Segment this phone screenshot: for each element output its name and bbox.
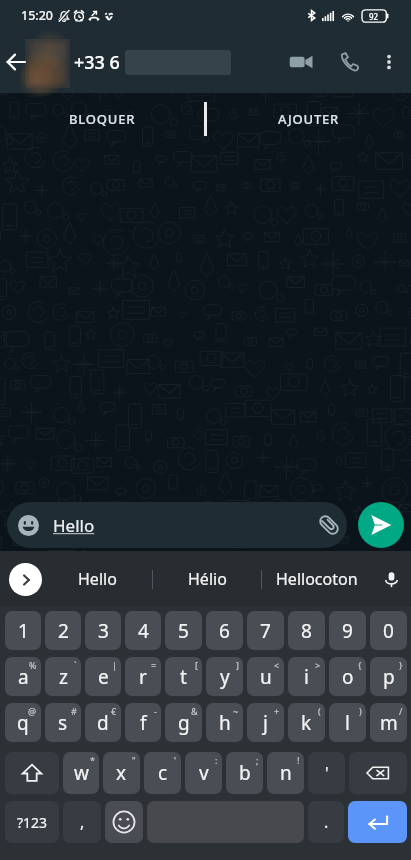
staticText: = bbox=[151, 659, 157, 671]
button[interactable]: ?123 bbox=[5, 801, 59, 843]
button[interactable]: v bbox=[185, 752, 222, 794]
staticText: @ bbox=[28, 705, 37, 717]
staticText: y bbox=[220, 664, 230, 690]
staticText: x bbox=[116, 760, 127, 786]
staticText: Hellocoton bbox=[276, 568, 358, 590]
button[interactable]: 2 bbox=[45, 611, 81, 650]
button[interactable]: 4 bbox=[125, 611, 161, 650]
button[interactable]: l bbox=[329, 703, 366, 742]
staticText: q bbox=[17, 710, 29, 736]
staticText: w bbox=[74, 760, 89, 786]
staticText: € bbox=[111, 705, 117, 717]
button[interactable]: n bbox=[267, 752, 304, 794]
button[interactable]: BLOQUER bbox=[0, 96, 204, 141]
button[interactable]: c bbox=[144, 752, 181, 794]
staticText: u bbox=[260, 664, 272, 690]
button[interactable]: Voice input bbox=[371, 551, 411, 607]
staticText: k bbox=[301, 710, 312, 736]
button[interactable]: g bbox=[165, 703, 202, 742]
button[interactable]: Backspace bbox=[349, 752, 407, 794]
button[interactable]: p bbox=[370, 657, 407, 696]
button[interactable]: w bbox=[63, 752, 99, 794]
staticText: AJOUTER bbox=[278, 110, 340, 128]
button[interactable]: Shift bbox=[5, 752, 59, 794]
staticText: } bbox=[399, 659, 403, 671]
button[interactable]: 3 bbox=[85, 611, 121, 650]
button[interactable]: . bbox=[308, 801, 344, 843]
button[interactable]: Send bbox=[358, 502, 404, 548]
button[interactable]: e bbox=[85, 657, 121, 696]
button[interactable]: Hellocoton bbox=[262, 551, 371, 607]
button[interactable]: 1 bbox=[5, 611, 41, 650]
staticText: < bbox=[274, 659, 280, 671]
staticText: : bbox=[215, 754, 218, 766]
staticText: & bbox=[191, 705, 198, 717]
button[interactable]: o bbox=[329, 657, 366, 696]
staticText: ` bbox=[74, 659, 77, 671]
staticText: h bbox=[219, 710, 231, 736]
button[interactable]: 5 bbox=[165, 611, 202, 650]
button[interactable]: d bbox=[85, 703, 121, 742]
button[interactable] bbox=[25, 39, 70, 88]
button[interactable]: b bbox=[226, 752, 263, 794]
button[interactable]: Back bbox=[2, 31, 30, 93]
button[interactable]: j bbox=[247, 703, 284, 742]
staticText: { bbox=[358, 659, 362, 671]
button[interactable]: 8 bbox=[288, 611, 325, 650]
button[interactable]: s bbox=[45, 703, 81, 742]
button[interactable]: i bbox=[288, 657, 325, 696]
staticText: ' bbox=[325, 762, 329, 784]
staticText: BLOQUER bbox=[69, 110, 136, 128]
staticText: " bbox=[132, 754, 136, 766]
staticText: Hélio bbox=[188, 568, 227, 590]
button[interactable]: m bbox=[370, 703, 407, 742]
button[interactable]: Hélio bbox=[153, 551, 261, 607]
button[interactable]: 9 bbox=[329, 611, 366, 650]
button[interactable]: Voice call bbox=[330, 31, 370, 93]
staticText: m bbox=[380, 710, 398, 736]
button[interactable]: z bbox=[45, 657, 81, 696]
button[interactable]: f bbox=[125, 703, 161, 742]
button[interactable]: Hello bbox=[42, 551, 152, 607]
button[interactable]: t bbox=[165, 657, 202, 696]
staticText: r bbox=[139, 664, 147, 690]
button[interactable]: h bbox=[206, 703, 243, 742]
button[interactable]: k bbox=[288, 703, 325, 742]
staticText: # bbox=[71, 705, 77, 717]
button[interactable]: Enter bbox=[348, 801, 407, 843]
staticText: % bbox=[29, 659, 37, 671]
staticText: . bbox=[324, 811, 329, 833]
button[interactable]: ' bbox=[308, 752, 345, 794]
staticText: s bbox=[58, 710, 68, 736]
button[interactable]: Video call bbox=[280, 31, 322, 93]
button[interactable]: 0 bbox=[370, 611, 407, 650]
staticText: 92 bbox=[369, 11, 379, 22]
button[interactable]: , bbox=[63, 801, 101, 843]
staticText: d bbox=[97, 710, 109, 736]
button[interactable]: x bbox=[103, 752, 140, 794]
button[interactable]: Hello bbox=[7, 502, 347, 548]
button[interactable]: More options bbox=[372, 31, 406, 93]
button[interactable]: 6 bbox=[206, 611, 243, 650]
button[interactable]: q bbox=[5, 703, 41, 742]
staticText: > bbox=[315, 659, 321, 671]
button[interactable]: y bbox=[206, 657, 243, 696]
staticText: 8 bbox=[301, 618, 312, 644]
staticText: a bbox=[18, 664, 29, 690]
staticText: 1 bbox=[18, 618, 29, 644]
staticText: Hello bbox=[53, 514, 95, 537]
staticText: c bbox=[158, 760, 168, 786]
button[interactable]: AJOUTER bbox=[207, 96, 411, 141]
staticText: | bbox=[112, 659, 117, 671]
button[interactable]: r bbox=[125, 657, 161, 696]
button[interactable]: 7 bbox=[247, 611, 284, 650]
staticText: e bbox=[98, 664, 109, 690]
button[interactable]: u bbox=[247, 657, 284, 696]
button[interactable]: a bbox=[5, 657, 41, 696]
staticText: + bbox=[274, 705, 280, 717]
button[interactable]: Emoji bbox=[105, 801, 143, 843]
staticText: l bbox=[345, 710, 350, 736]
button[interactable]: +33 6 bbox=[74, 31, 280, 93]
button[interactable]: Expand toolbar bbox=[9, 563, 42, 596]
